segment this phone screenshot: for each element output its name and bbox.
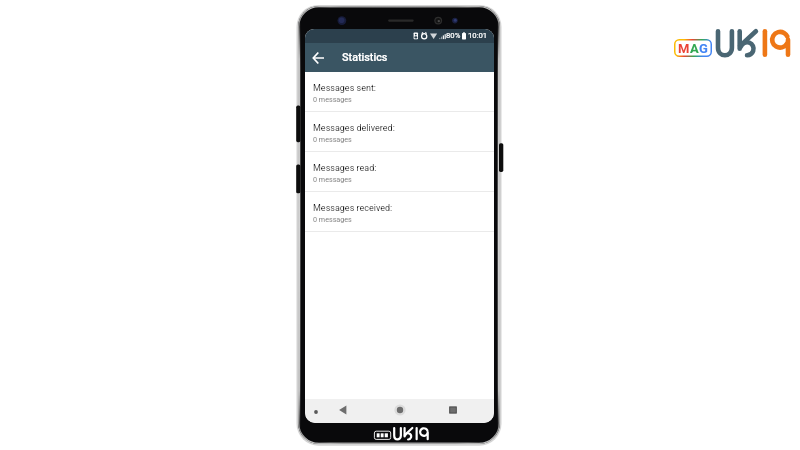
staticText: Messages received: [313,203,393,214]
button[interactable]: Back [305,43,333,72]
staticText: A [690,41,699,56]
button[interactable]: Messages received: [305,192,494,232]
staticText: 10:01 [468,31,488,40]
staticText: Messages read: [313,163,377,174]
staticText: 0 messages [313,135,352,143]
button[interactable]: Recent apps [445,402,461,418]
button[interactable]: Home [392,402,408,418]
staticText: Statistics [342,51,388,64]
staticText: 0 messages [313,175,352,183]
staticText: Messages sent: [313,83,377,94]
staticText: M [678,41,690,56]
button[interactable]: Back [335,402,351,418]
staticText: G [699,41,708,56]
staticText: 0 messages [313,95,352,103]
button[interactable]: Messages sent: [305,72,494,112]
button[interactable]: Messages delivered: [305,112,494,152]
staticText: 0 messages [313,215,352,223]
staticText: 80% [446,31,461,40]
button[interactable]: Messages read: [305,152,494,192]
button[interactable]: Menu [308,404,324,420]
staticText: Messages delivered: [313,123,395,134]
